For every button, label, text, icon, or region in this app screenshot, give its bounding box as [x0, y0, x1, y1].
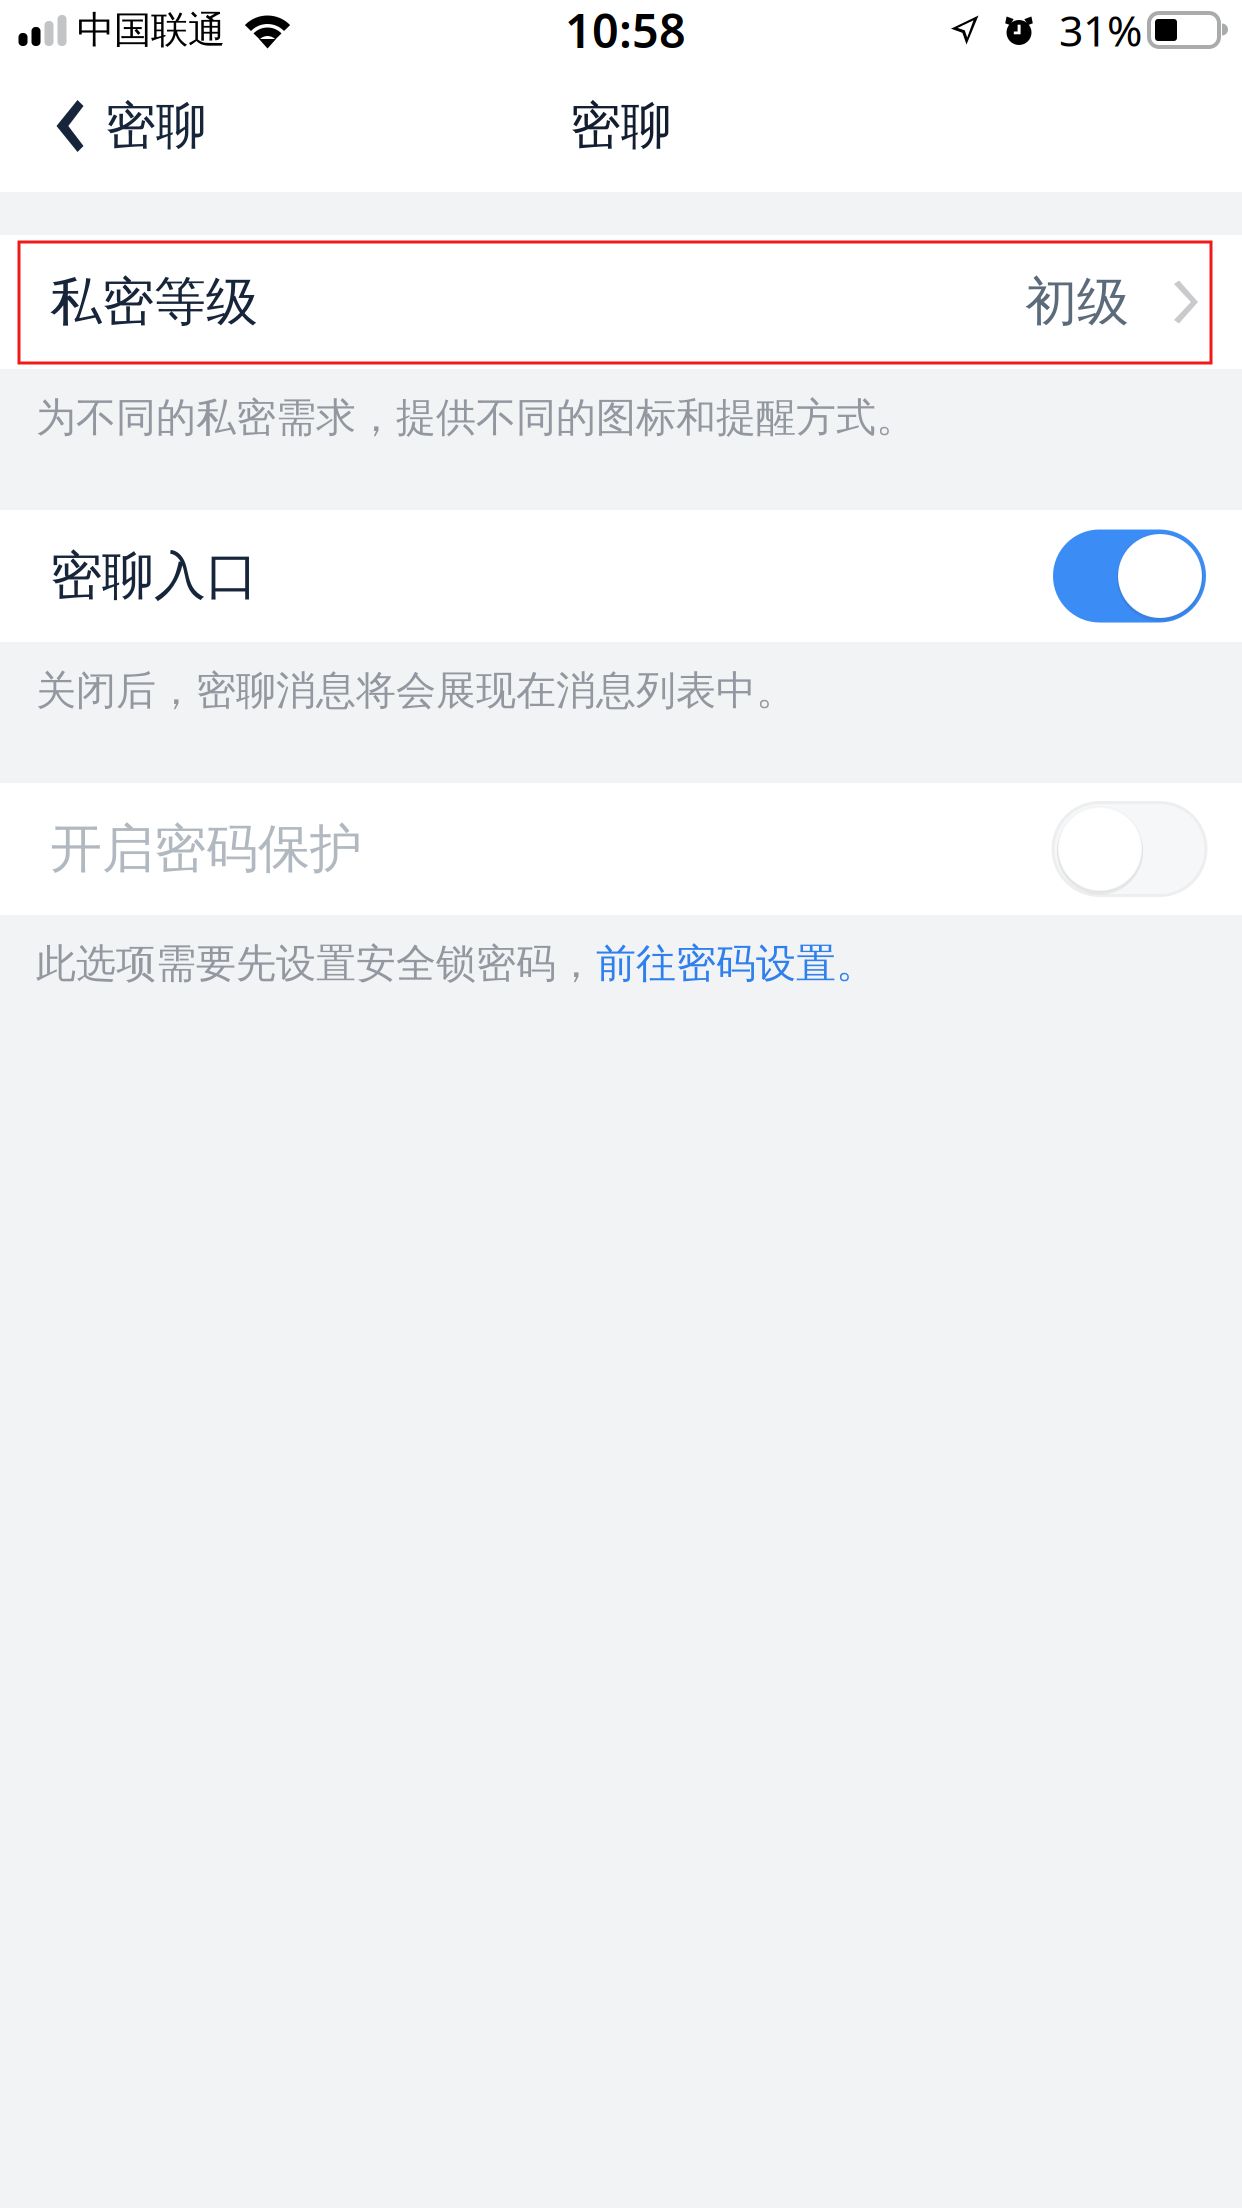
staticText: 中国联通	[77, 7, 225, 53]
staticText: 初级	[1025, 270, 1129, 334]
staticText: 关闭后，密聊消息将会展现在消息列表中。	[36, 666, 796, 715]
staticText: 密聊	[570, 95, 672, 157]
button[interactable]: 私密等级	[0, 235, 1242, 369]
staticText: 密聊入口	[50, 544, 258, 608]
staticText: 开启密码保护	[50, 817, 362, 881]
staticText: 为不同的私密需求，提供不同的图标和提醒方式。	[36, 393, 916, 442]
staticText: 私密等级	[50, 270, 258, 334]
staticText: 31%	[1059, 2, 1142, 58]
staticText: 前往密码设置。	[596, 939, 876, 988]
staticText: 密聊	[105, 95, 207, 157]
button[interactable]: 返回 密聊	[0, 60, 233, 192]
staticText: 此选项需要先设置安全锁密码，	[36, 939, 596, 988]
button[interactable]: 密聊入口	[1053, 529, 1206, 622]
staticText: 10:58	[565, 0, 686, 61]
button[interactable]: 前往密码设置。	[596, 939, 876, 988]
button[interactable]: 开启密码保护	[1053, 802, 1206, 895]
